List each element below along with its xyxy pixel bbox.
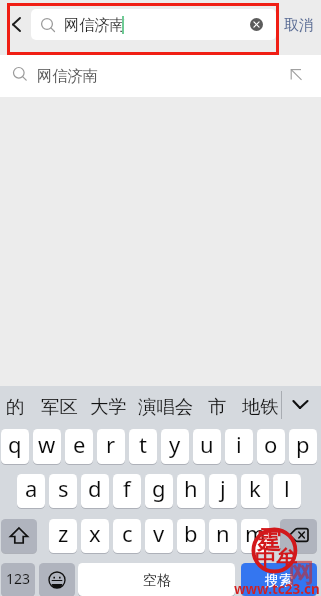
button[interactable]: 123 (1, 563, 35, 596)
staticText: p (296, 429, 310, 459)
button[interactable]: z (49, 519, 77, 553)
button[interactable]: k (241, 474, 269, 508)
button[interactable]: 市 (202, 389, 221, 419)
staticText: w (38, 429, 56, 459)
staticText: c (122, 519, 133, 548)
staticText: q (8, 429, 22, 459)
button[interactable]: i (225, 429, 253, 464)
staticText: 空格 (143, 572, 171, 590)
button[interactable]: Shift (1, 519, 37, 553)
button[interactable]: p (289, 429, 317, 464)
button[interactable]: 的 (0, 389, 19, 419)
staticText: d (88, 474, 102, 503)
button[interactable]: Emoji keyboard (39, 563, 75, 596)
button[interactable]: x (81, 519, 109, 553)
staticText: x (89, 519, 101, 548)
staticText: j (220, 474, 226, 503)
button[interactable]: e (65, 429, 93, 464)
staticText: s (58, 474, 69, 503)
staticText: 网信济南 (37, 66, 98, 85)
button[interactable]: Back (5, 10, 33, 38)
staticText: h (184, 474, 198, 503)
staticText: 的 (6, 395, 25, 418)
button[interactable]: 取消 (280, 11, 318, 39)
staticText: y (169, 429, 181, 459)
staticText: l (284, 474, 290, 503)
button[interactable]: 地铁 (236, 389, 273, 419)
staticText: 演唱会 (138, 395, 194, 418)
staticText: 网 (288, 557, 314, 590)
button[interactable]: 空格 (78, 563, 235, 596)
button[interactable]: 搜索 (241, 563, 317, 596)
button[interactable]: c (113, 519, 141, 553)
button[interactable]: Fill search box (285, 63, 307, 85)
button[interactable]: f (113, 474, 141, 508)
staticText: www.tc23.cn (234, 580, 320, 596)
button[interactable]: 军区 (35, 389, 72, 419)
staticText: 市 (208, 395, 227, 418)
staticText: a (25, 474, 38, 503)
staticText: g (152, 474, 166, 503)
button[interactable]: s (49, 474, 77, 508)
button[interactable]: v (145, 519, 173, 553)
button[interactable]: o (257, 429, 285, 464)
staticText: o (264, 429, 278, 459)
staticText: v (153, 519, 165, 548)
staticText: u (200, 429, 214, 459)
button[interactable]: l (273, 474, 301, 508)
button[interactable]: j (209, 474, 237, 508)
staticText: 搜索 (265, 572, 293, 590)
staticText: m (245, 519, 266, 548)
button[interactable]: r (97, 429, 125, 464)
button[interactable]: g (145, 474, 173, 508)
staticText: 中牟 (255, 546, 297, 572)
button[interactable]: w (33, 429, 61, 464)
staticText: z (58, 519, 69, 548)
staticText: e (73, 429, 86, 459)
button[interactable]: n (209, 519, 237, 553)
button[interactable]: 网信济南 (0, 55, 321, 97)
staticText: f (123, 474, 131, 503)
staticText: 网信济南 (64, 15, 125, 34)
staticText: 霆 (256, 525, 281, 556)
staticText: i (236, 429, 242, 459)
button[interactable]: q (1, 429, 29, 464)
button[interactable]: d (81, 474, 109, 508)
staticText: 大学 (90, 395, 127, 418)
staticText: b (184, 519, 198, 548)
staticText: t (139, 429, 147, 459)
button[interactable]: Backspace (280, 519, 317, 553)
staticText: k (249, 474, 261, 503)
button[interactable]: 大学 (84, 389, 121, 419)
staticText: r (106, 429, 116, 459)
staticText: 取消 (284, 16, 314, 35)
button[interactable]: Hide keyboard (288, 394, 312, 418)
button[interactable]: y (161, 429, 189, 464)
button[interactable]: 网信济南 (31, 9, 276, 40)
button[interactable]: u (193, 429, 221, 464)
button[interactable]: t (129, 429, 157, 464)
button[interactable]: m (241, 519, 269, 553)
button[interactable]: 演唱会 (132, 389, 188, 419)
button[interactable]: b (177, 519, 205, 553)
button[interactable]: Clear text (250, 18, 263, 31)
staticText: 军区 (41, 395, 78, 418)
staticText: 地铁 (242, 395, 279, 418)
staticText: 123 (6, 569, 31, 588)
button[interactable]: a (17, 474, 45, 508)
button[interactable]: h (177, 474, 205, 508)
staticText: n (216, 519, 230, 548)
